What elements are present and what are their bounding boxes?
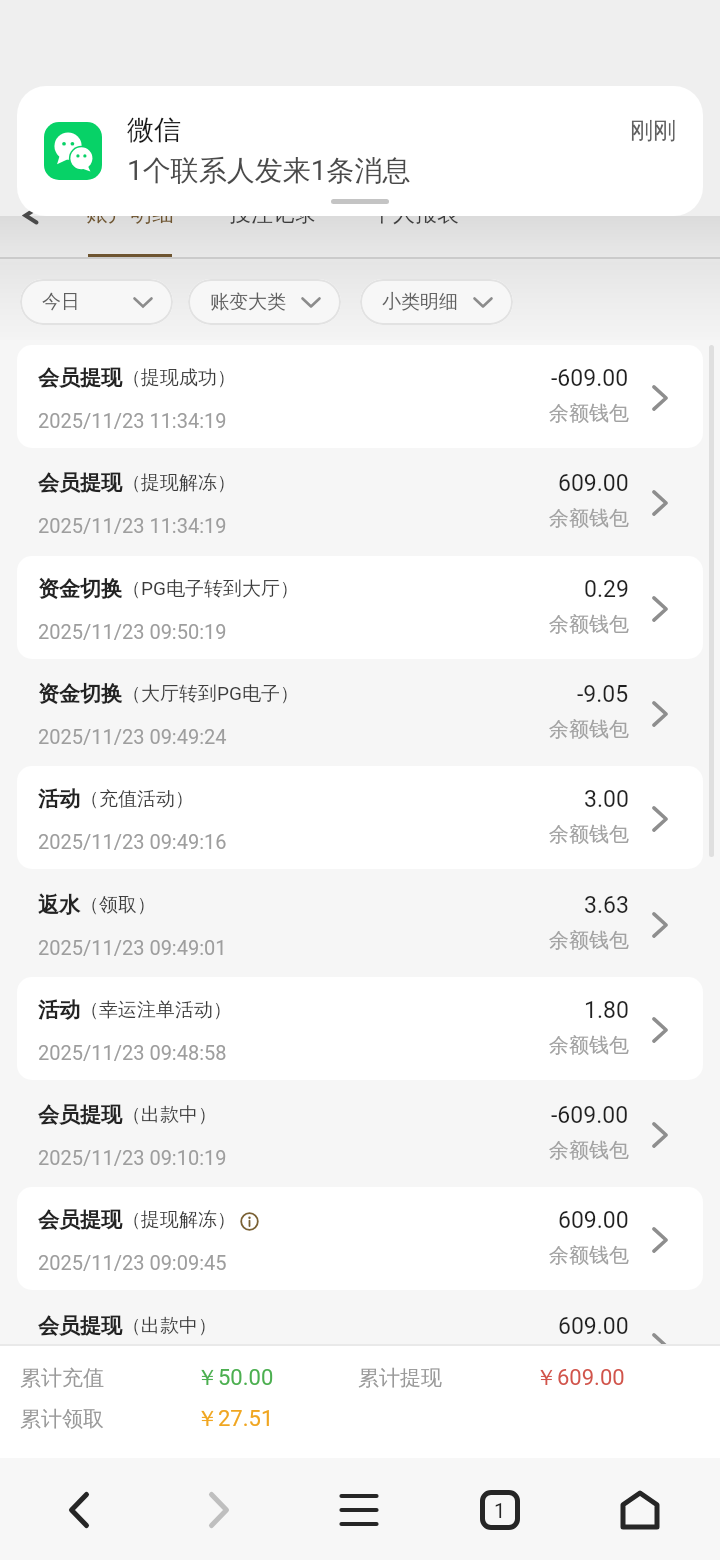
staticText: 小类明细 bbox=[382, 290, 458, 314]
staticText: 609.00 bbox=[558, 470, 629, 497]
button[interactable]: 会员提现 bbox=[17, 345, 703, 448]
staticText: （幸运注单活动） bbox=[80, 998, 232, 1022]
staticText: 个人报表 bbox=[371, 200, 459, 228]
staticText: -609.00 bbox=[551, 365, 629, 392]
staticText: ￥609.00 bbox=[535, 1364, 625, 1392]
staticText: 余额钱包 bbox=[549, 822, 629, 847]
staticText: （出款中） bbox=[122, 1103, 217, 1127]
staticText: （出款中） bbox=[122, 1314, 217, 1338]
staticText: 会员提现 bbox=[38, 1102, 122, 1128]
staticText: 资金切换 bbox=[38, 576, 122, 602]
staticText: 余额钱包 bbox=[549, 401, 629, 426]
staticText: 账变大类 bbox=[210, 290, 286, 314]
staticText: 今日 bbox=[42, 290, 80, 314]
button[interactable]: Tabs bbox=[470, 1480, 530, 1540]
staticText: （充值活动） bbox=[80, 787, 194, 811]
staticText: 2025/11/23 09:49:24 bbox=[38, 725, 227, 748]
staticText: 余额钱包 bbox=[549, 1033, 629, 1058]
staticText: 余额钱包 bbox=[549, 1138, 629, 1163]
staticText: 余额钱包 bbox=[549, 612, 629, 637]
staticText: 累计领取 bbox=[20, 1406, 104, 1432]
button[interactable]: 今日 bbox=[20, 279, 173, 325]
button[interactable]: 资金切换 bbox=[17, 556, 703, 659]
staticText: 2025/11/23 09:09:45 bbox=[38, 1251, 227, 1274]
staticText: 2025/11/23 09:10:19 bbox=[38, 1146, 227, 1169]
button[interactable]: Menu bbox=[329, 1480, 389, 1540]
staticText: -9.05 bbox=[577, 681, 629, 708]
staticText: ￥50.00 bbox=[196, 1364, 274, 1392]
staticText: 1 bbox=[494, 1499, 506, 1522]
button[interactable]: 微信 bbox=[17, 86, 703, 216]
button[interactable]: 会员提现 bbox=[17, 1082, 703, 1185]
staticText: 会员提现 bbox=[38, 1313, 122, 1339]
staticText: （大厅转到PG电子） bbox=[122, 682, 299, 706]
button[interactable]: 小类明细 bbox=[360, 279, 513, 325]
staticText: （提现解冻） bbox=[122, 471, 236, 495]
button[interactable]: 返水 bbox=[17, 872, 703, 975]
staticText: 609.00 bbox=[558, 1313, 629, 1340]
staticText: 会员提现 bbox=[38, 1207, 122, 1233]
staticText: 微信 bbox=[127, 113, 181, 147]
staticText: 累计提现 bbox=[358, 1365, 442, 1391]
button[interactable]: 活动 bbox=[17, 977, 703, 1080]
button[interactable]: 资金切换 bbox=[17, 661, 703, 764]
staticText: 609.00 bbox=[558, 1207, 629, 1234]
staticText: 2025/11/23 09:49:16 bbox=[38, 830, 227, 853]
staticText: 余额钱包 bbox=[549, 1349, 629, 1374]
staticText: （提现成功） bbox=[122, 366, 236, 390]
button[interactable]: Forward bbox=[189, 1480, 249, 1540]
button[interactable]: 活动 bbox=[17, 766, 703, 869]
button[interactable]: 个人报表 bbox=[349, 190, 481, 257]
staticText: 2025/11/23 09:48:58 bbox=[38, 1041, 227, 1064]
staticText: 余额钱包 bbox=[549, 928, 629, 953]
button[interactable]: 账户明细 bbox=[64, 190, 196, 257]
staticText: 余额钱包 bbox=[549, 717, 629, 742]
staticText: 2025/11/23 09:09:45 bbox=[38, 1357, 227, 1380]
button[interactable]: Back bbox=[6, 190, 56, 240]
staticText: 活动 bbox=[38, 997, 80, 1023]
button[interactable]: 投注记录 bbox=[207, 190, 339, 257]
staticText: （提现解冻） bbox=[122, 1208, 236, 1232]
staticText: 2025/11/23 11:34:19 bbox=[38, 409, 227, 432]
staticText: （PG电子转到大厅） bbox=[122, 577, 299, 601]
staticText: 会员提现 bbox=[38, 470, 122, 496]
staticText: 0.29 bbox=[584, 576, 629, 603]
staticText: 刚刚 bbox=[630, 116, 676, 145]
button[interactable]: Home bbox=[610, 1480, 670, 1540]
staticText: 余额钱包 bbox=[549, 506, 629, 531]
staticText: 3.63 bbox=[584, 892, 629, 919]
button[interactable]: 会员提现 bbox=[17, 1187, 703, 1290]
staticText: 会员提现 bbox=[38, 365, 122, 391]
staticText: 累计充值 bbox=[20, 1365, 104, 1391]
staticText: 返水 bbox=[38, 892, 80, 918]
staticText: ￥27.51 bbox=[196, 1405, 274, 1433]
button[interactable]: 会员提现 bbox=[17, 1293, 703, 1396]
button[interactable]: Back bbox=[49, 1480, 109, 1540]
staticText: 2025/11/23 09:50:19 bbox=[38, 620, 227, 643]
staticText: 3.00 bbox=[584, 786, 629, 813]
staticText: 账户明细 bbox=[86, 200, 174, 228]
staticText: 余额钱包 bbox=[549, 1243, 629, 1268]
staticText: （领取） bbox=[80, 893, 156, 917]
staticText: 活动 bbox=[38, 786, 80, 812]
staticText: 1个联系人发来1条消息 bbox=[127, 153, 411, 188]
staticText: -609.00 bbox=[551, 1102, 629, 1129]
button[interactable]: 账变大类 bbox=[188, 279, 341, 325]
staticText: 资金切换 bbox=[38, 681, 122, 707]
staticText: 2025/11/23 11:34:19 bbox=[38, 514, 227, 537]
staticText: 1.80 bbox=[584, 997, 629, 1024]
button[interactable]: 会员提现 bbox=[17, 450, 703, 553]
staticText: 投注记录 bbox=[229, 200, 317, 228]
staticText: 2025/11/23 09:49:01 bbox=[38, 936, 227, 959]
